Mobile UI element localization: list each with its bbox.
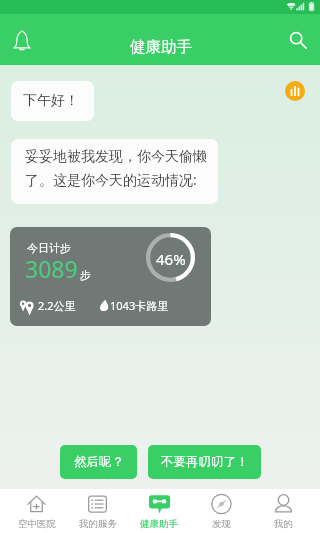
staticText: 步 xyxy=(80,268,91,282)
staticText: 今日计步 xyxy=(27,241,71,255)
button[interactable]: 不要再叨叨了！ xyxy=(148,445,261,479)
staticText: 46% xyxy=(156,249,186,269)
staticText: 健康助手 xyxy=(140,518,178,530)
button[interactable]: Notifications xyxy=(6,20,38,60)
staticText: 妥妥地被我发现，你今天偷懒了。这是你今天的运动情况: xyxy=(25,148,207,190)
staticText: 我的服务 xyxy=(79,518,117,530)
staticText: 1043卡路里 xyxy=(110,298,169,313)
staticText: 我的 xyxy=(274,518,293,530)
staticText: 发现 xyxy=(212,518,231,530)
staticText: 不要再叨叨了！ xyxy=(161,454,249,470)
staticText: 下午好！ xyxy=(23,92,79,110)
staticText: 然后呢？ xyxy=(74,454,124,470)
staticText: 2.2公里 xyxy=(38,298,76,313)
staticText: 3089 xyxy=(25,253,78,284)
button[interactable]: 空中医院 xyxy=(6,489,67,533)
button[interactable]: 今日计步 xyxy=(10,227,211,326)
staticText: 健康助手 xyxy=(130,37,192,57)
button[interactable]: 健康助手 xyxy=(128,489,190,533)
button[interactable]: 我的 xyxy=(252,489,314,533)
button[interactable]: 然后呢？ xyxy=(60,445,137,479)
button[interactable]: 发现 xyxy=(190,489,252,533)
button[interactable]: 我的服务 xyxy=(67,489,128,533)
button[interactable]: Search xyxy=(282,20,314,60)
staticText: 空中医院 xyxy=(18,518,56,530)
